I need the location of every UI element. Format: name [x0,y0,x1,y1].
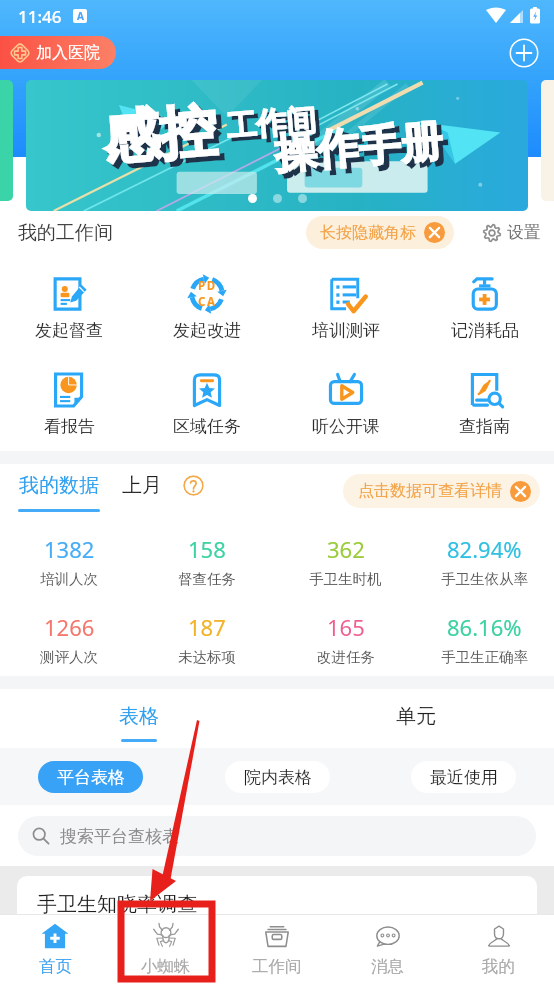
staticText: 记消耗品 [451,320,519,341]
button[interactable]: 手卫生知晓率调查 [17,876,537,984]
staticText: 165 [327,612,365,642]
button[interactable]: 小蜘蛛 [110,915,221,984]
staticText: 362 [327,534,365,564]
button[interactable]: 1266 [0,598,138,676]
staticText: A [77,9,84,23]
staticText: 86.16% [447,612,522,642]
button[interactable]: 平台表格 [38,761,143,793]
staticText: 发起改进 [173,320,241,341]
staticText: 工作间 [252,956,302,977]
button[interactable]: 首页 [0,915,110,984]
staticText: 表格 [119,704,159,729]
button[interactable]: Add [506,35,542,71]
button[interactable]: 187 [138,598,276,676]
button[interactable]: 86.16% [415,598,554,676]
staticText: CA [198,294,217,310]
button[interactable]: Help [183,475,204,496]
staticText: 我的 [482,956,515,977]
staticText: 感控 [106,99,225,180]
button[interactable]: 听公开课 [276,350,415,446]
staticText: 听公开课 [312,416,380,437]
staticText: 改进任务 [317,648,375,666]
staticText: 82.94% [447,534,522,564]
button[interactable]: 设置 [482,218,540,247]
staticText: 长按隐藏角标 [320,223,416,243]
button[interactable]: 感控 [26,80,528,211]
button[interactable]: 点击数据可查看详情 [343,474,540,508]
staticText: 158 [188,534,226,564]
staticText: 感控 [100,95,219,175]
staticText: 消息 [371,956,404,977]
button[interactable]: 362 [276,520,415,598]
staticText: 1382 [44,534,95,564]
button[interactable]: 工作间 [221,915,332,984]
staticText: PD [198,278,217,294]
staticText: 搜索平台查核表 [60,826,179,847]
staticText: 测评人次 [40,648,98,666]
button[interactable]: 我的 [443,915,554,984]
button[interactable]: 1382 [0,520,138,598]
button[interactable]: 发起督查 [0,254,138,350]
staticText: 区域任务 [173,416,241,437]
staticText: 首页 [39,956,72,977]
button[interactable]: 看报告 [0,350,138,446]
button[interactable]: 158 [138,520,276,598]
button[interactable]: 区域任务 [138,350,276,446]
button[interactable]: 搜索平台查核表 [18,816,536,856]
staticText: 手卫生知晓率调查 [37,892,197,917]
staticText: 看报告 [44,416,95,437]
staticText: 培训人次 [40,570,98,588]
button[interactable]: 165 [276,598,415,676]
button[interactable]: 单元 [277,689,554,748]
staticText: 我的数据 [19,473,99,498]
staticText: 未达标项 [178,648,236,666]
staticText: 小蜘蛛 [141,956,191,977]
staticText: 平台表格 [57,767,125,788]
button[interactable]: PD [138,254,276,350]
staticText: 1266 [44,612,95,642]
staticText: 单元 [396,704,436,729]
button[interactable]: 我的数据 [18,473,100,512]
button[interactable]: 消息 [332,915,443,984]
staticText: 工作间 [229,105,322,149]
button[interactable]: 记消耗品 [415,254,554,350]
staticText: 院内表格 [244,767,312,788]
staticText: 设置 [507,222,540,243]
button[interactable]: 上月 [122,473,162,498]
staticText: 手卫生正确率 [441,648,528,666]
staticText: 操作手册 [278,120,450,186]
staticText: 发起督查 [35,320,103,341]
staticText: 手卫生时机 [309,570,382,588]
staticText: 加入医院 [36,43,100,63]
staticText: 点击数据可查看详情 [358,481,502,501]
staticText: 最近使用 [430,767,498,788]
staticText: 操作手册 [273,115,444,181]
button[interactable]: 加入医院 [0,36,116,69]
staticText: 11:46 [18,5,62,28]
button[interactable]: 最近使用 [411,761,516,793]
staticText: 督查任务 [178,570,236,588]
button[interactable]: 院内表格 [225,761,330,793]
staticText: 上月 [122,473,162,498]
staticText: 工作间 [225,101,318,146]
staticText: 手卫生依从率 [441,570,528,588]
button[interactable]: 培训测评 [276,254,415,350]
staticText: 187 [188,612,226,642]
staticText: 查指南 [459,416,510,437]
button[interactable]: 查指南 [415,350,554,446]
staticText: 我的工作间 [18,221,113,245]
button[interactable]: 长按隐藏角标 [306,216,454,249]
button[interactable]: 82.94% [415,520,554,598]
button[interactable]: 表格 [0,689,277,748]
staticText: 培训测评 [312,320,380,341]
